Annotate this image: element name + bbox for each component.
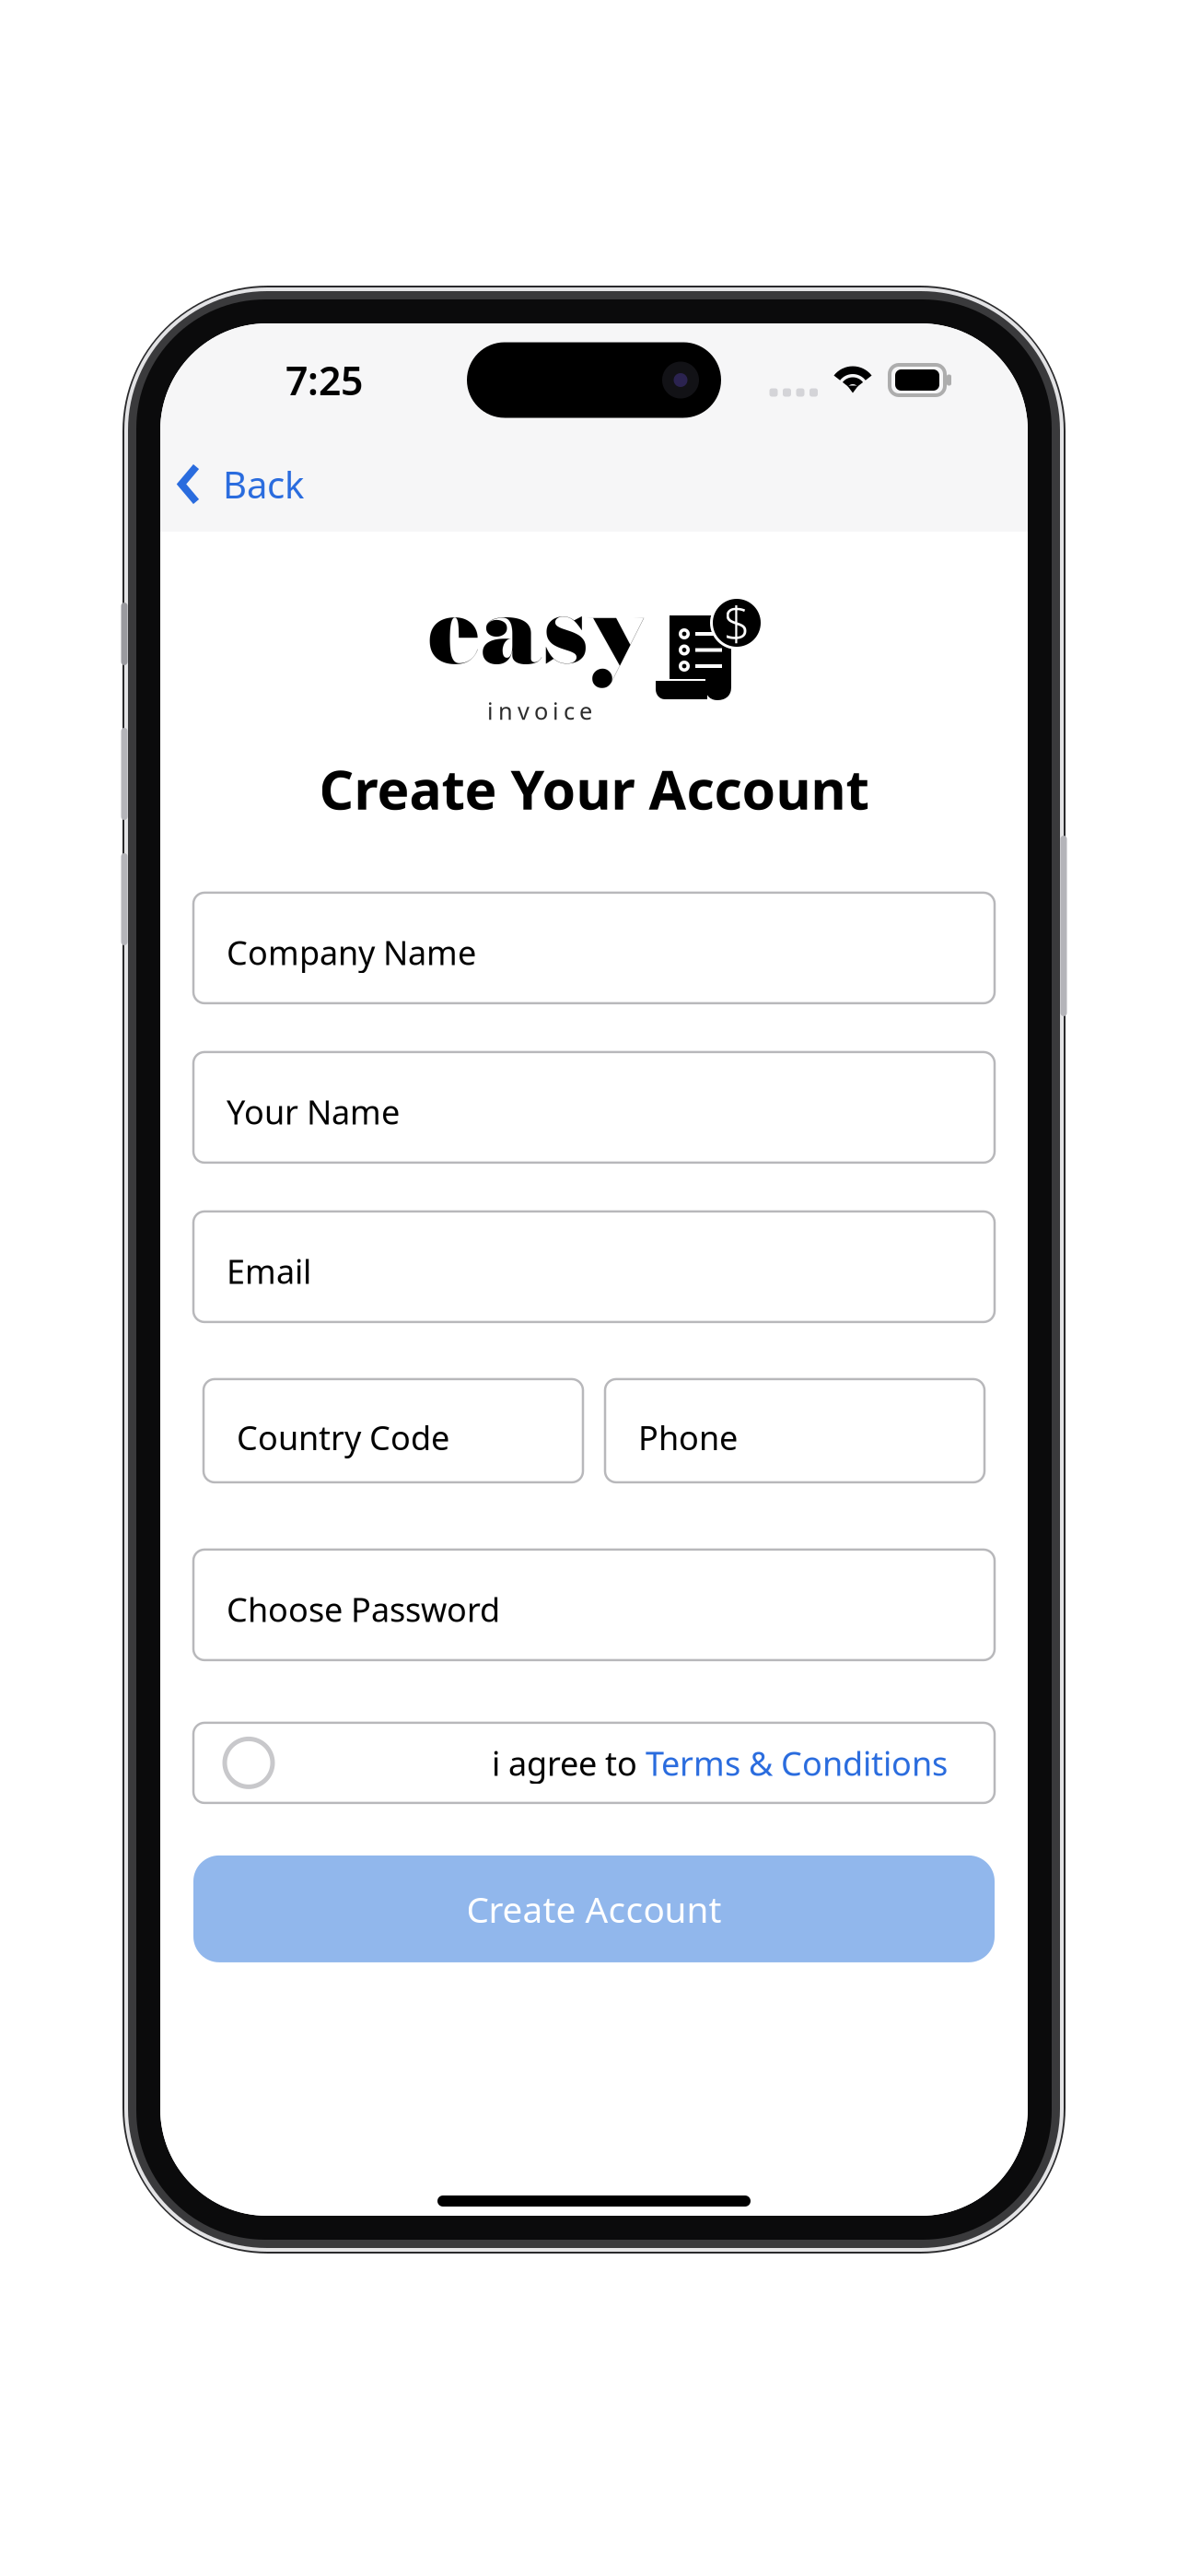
staticText: Create Your Account — [319, 753, 869, 824]
button[interactable]: Create Account — [193, 1855, 995, 1962]
staticText: Create Account — [466, 1885, 722, 1932]
button[interactable]: Your Name — [193, 1052, 995, 1163]
staticText: Phone — [638, 1415, 738, 1459]
button[interactable]: Country Code — [204, 1379, 583, 1482]
staticText: 7:25 — [285, 354, 363, 406]
staticText: easy — [427, 553, 652, 703]
button[interactable]: Phone — [605, 1379, 984, 1482]
staticText: Country Code — [237, 1415, 449, 1459]
staticText: $ — [723, 592, 750, 654]
button[interactable]: Back — [160, 443, 304, 525]
staticText: Company Name — [227, 930, 476, 974]
button[interactable]: i agree to — [193, 1723, 995, 1803]
staticText: Back — [223, 460, 304, 509]
staticText: Your Name — [227, 1089, 400, 1133]
staticText: invoice — [487, 695, 592, 726]
staticText: Email — [227, 1249, 311, 1293]
button[interactable]: Company Name — [193, 893, 995, 1003]
button[interactable]: Choose Password — [193, 1550, 995, 1660]
staticText: Terms & Conditions — [646, 1741, 948, 1785]
staticText: Choose Password — [227, 1587, 500, 1631]
staticText: i agree to — [492, 1741, 646, 1785]
button[interactable]: Email — [193, 1211, 995, 1322]
